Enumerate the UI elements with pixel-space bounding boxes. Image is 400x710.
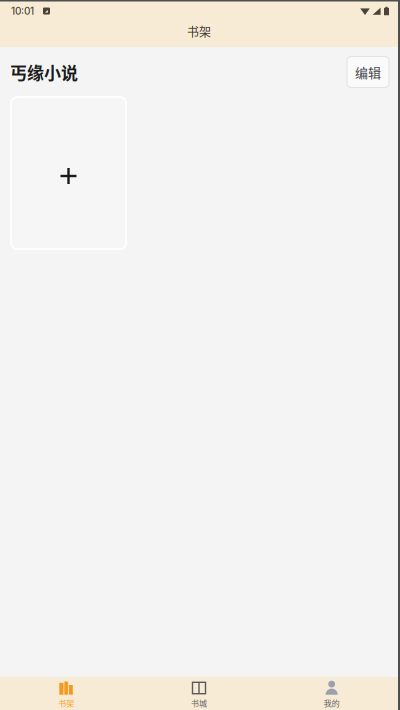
staticText: 书架 (58, 697, 74, 709)
staticText: 编辑 (355, 63, 381, 81)
button[interactable]: 书架 (0, 679, 133, 710)
staticText: 我的 (324, 697, 340, 709)
button[interactable]: Add book (11, 97, 126, 249)
staticText: 丐缘小说 (10, 60, 78, 84)
staticText: 书架 (187, 23, 211, 40)
button[interactable]: 编辑 (347, 57, 389, 87)
staticText: 10:01 (11, 5, 34, 17)
button[interactable]: 书城 (133, 679, 265, 710)
button[interactable]: 我的 (265, 679, 398, 710)
staticText: 书城 (191, 697, 207, 709)
